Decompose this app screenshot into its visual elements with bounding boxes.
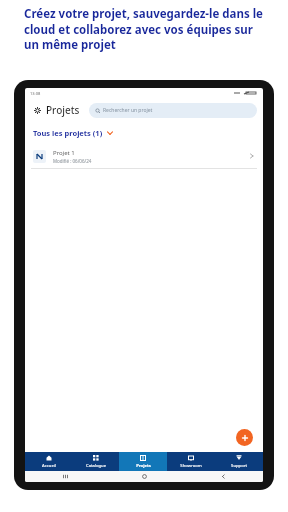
button[interactable]: Ajouter un projet — [236, 429, 253, 446]
button[interactable]: Catalogue — [72, 452, 119, 471]
staticText: 13:08 — [30, 91, 41, 96]
button[interactable]: Showroom — [167, 452, 215, 471]
button[interactable]: Projet 1 — [25, 144, 263, 168]
button[interactable]: Projets — [119, 452, 167, 471]
staticText: Accueil — [42, 463, 56, 469]
staticText: Créez votre projet, sauvegardez-le dans … — [24, 6, 270, 52]
staticText: Modifié : 06/06/24 — [53, 158, 92, 164]
button[interactable]: Rechercher un projet — [89, 103, 257, 118]
button[interactable]: Recents — [25, 471, 105, 482]
staticText: Rechercher un projet — [103, 107, 153, 114]
staticText: Projets — [46, 103, 80, 117]
staticText: Projet 1 — [53, 149, 75, 157]
staticText: Showroom — [180, 463, 202, 469]
staticText: Projets — [136, 463, 151, 469]
button[interactable]: Accueil — [25, 452, 72, 471]
staticText: Tous les projets (1) — [33, 128, 103, 138]
button[interactable]: Support — [215, 452, 263, 471]
button[interactable]: Tous les projets (1) — [33, 128, 263, 138]
staticText: Support — [231, 463, 247, 469]
button[interactable]: Home — [105, 471, 184, 482]
button[interactable]: Paramètres — [31, 104, 43, 116]
button[interactable]: Back — [184, 471, 263, 482]
staticText: Catalogue — [86, 463, 106, 469]
